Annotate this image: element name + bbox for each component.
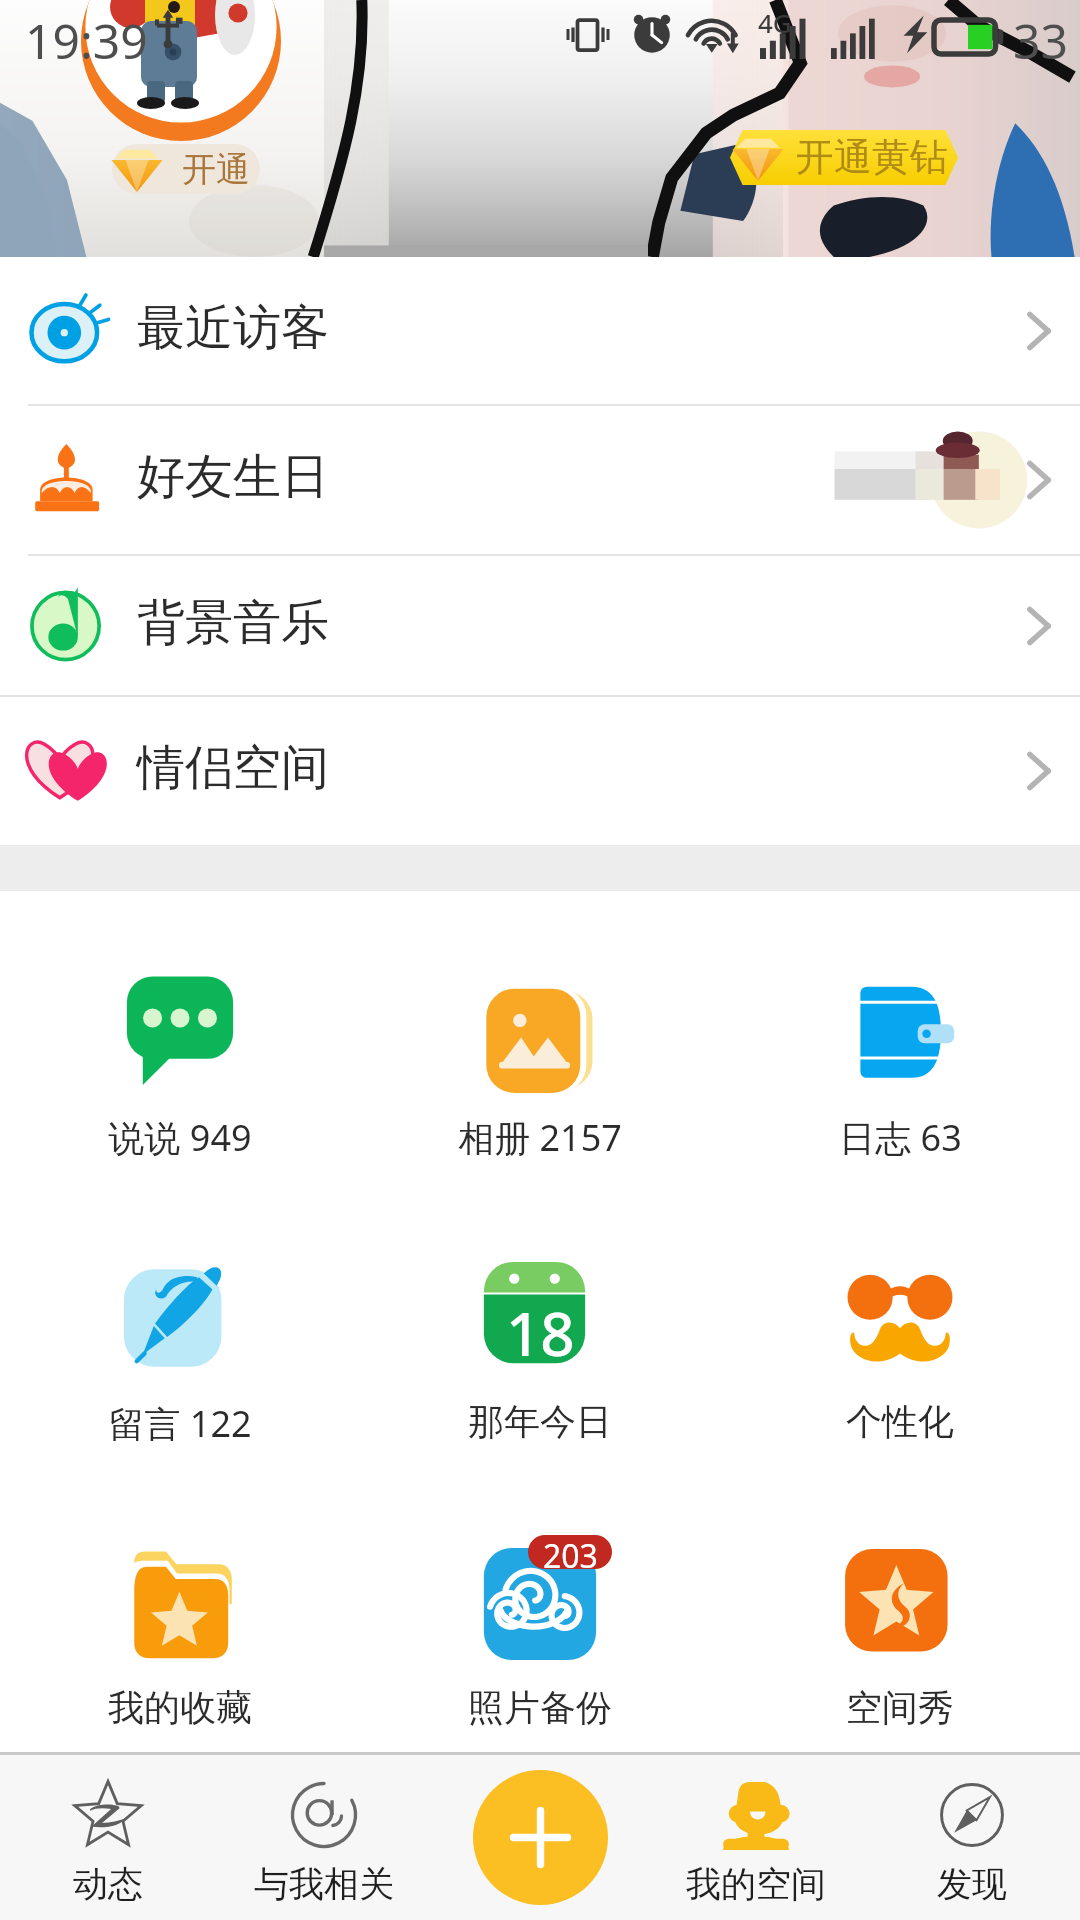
button[interactable]: 开通 — [112, 144, 260, 194]
staticText: 我的空间 — [686, 1862, 826, 1906]
staticText: 18 — [506, 1292, 575, 1374]
button[interactable]: 空间秀 — [720, 1465, 1080, 1751]
button[interactable]: 我的空间 — [648, 1755, 864, 1920]
button[interactable]: 开通黄钻 — [730, 130, 958, 185]
staticText: 动态 — [73, 1862, 143, 1906]
staticText: 33 — [1013, 8, 1068, 73]
button[interactable]: 我的收藏 — [0, 1465, 360, 1751]
button[interactable]: 动态 — [0, 1755, 216, 1920]
staticText: 相册 2157 — [458, 1113, 622, 1162]
button[interactable]: 好友生日 — [0, 406, 1080, 556]
button[interactable]: Avatar — [81, 0, 281, 141]
button[interactable]: 18 — [360, 1179, 720, 1465]
staticText: 开通黄钻 — [796, 133, 948, 181]
staticText: 日志 63 — [839, 1113, 962, 1162]
staticText: 我的收藏 — [108, 1685, 252, 1730]
staticText: 那年今日 — [468, 1399, 612, 1444]
button[interactable]: 情侣空间 — [0, 697, 1080, 845]
staticText: 203 — [543, 1535, 598, 1568]
button[interactable]: 发现 — [864, 1755, 1080, 1920]
button[interactable]: 说说 949 — [0, 891, 360, 1179]
button[interactable]: 个性化 — [720, 1179, 1080, 1465]
staticText: 说说 949 — [108, 1113, 252, 1162]
staticText: 4G — [758, 5, 792, 40]
staticText: 背景音乐 — [137, 593, 329, 653]
staticText: 发现 — [937, 1862, 1007, 1906]
button[interactable]: 发表 — [473, 1770, 608, 1905]
button[interactable]: 相册 2157 — [360, 891, 720, 1179]
button[interactable]: 背景音乐 — [0, 556, 1080, 697]
staticText: 空间秀 — [846, 1685, 954, 1730]
button[interactable]: 日志 63 — [720, 891, 1080, 1179]
staticText: 个性化 — [846, 1399, 954, 1444]
button[interactable]: 与我相关 — [216, 1755, 432, 1920]
staticText: 情侣空间 — [137, 738, 329, 798]
button[interactable]: 203 — [360, 1465, 720, 1751]
staticText: 留言 122 — [108, 1399, 252, 1448]
button[interactable]: 留言 122 — [0, 1179, 360, 1465]
staticText: 好友生日 — [137, 447, 329, 507]
staticText: 最近访客 — [137, 298, 329, 358]
staticText: 19:39 — [25, 8, 148, 73]
button[interactable]: 最近访客 — [0, 257, 1080, 406]
staticText: 开通 — [182, 148, 250, 191]
staticText: 照片备份 — [468, 1685, 612, 1730]
staticText: 与我相关 — [254, 1862, 394, 1906]
